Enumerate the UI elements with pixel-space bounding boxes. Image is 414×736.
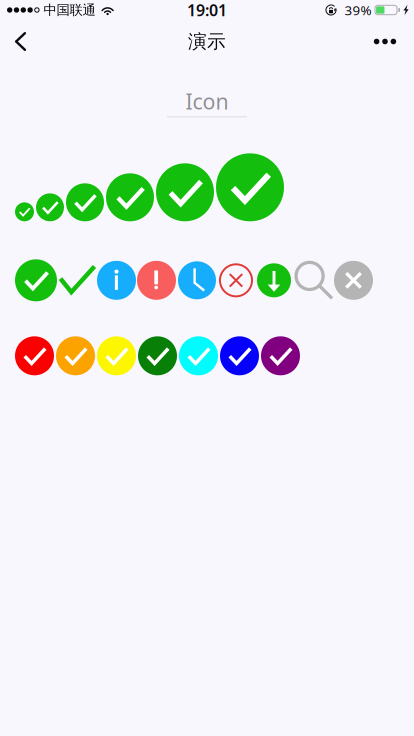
staticText: 39% bbox=[344, 1, 371, 19]
button[interactable]: More bbox=[365, 20, 405, 62]
button[interactable]: Back bbox=[4, 20, 37, 62]
staticText: 19:01 bbox=[187, 0, 227, 21]
staticText: 演示 bbox=[188, 30, 226, 53]
staticText: 中国联通 bbox=[44, 2, 96, 18]
staticText: Icon bbox=[185, 87, 228, 115]
